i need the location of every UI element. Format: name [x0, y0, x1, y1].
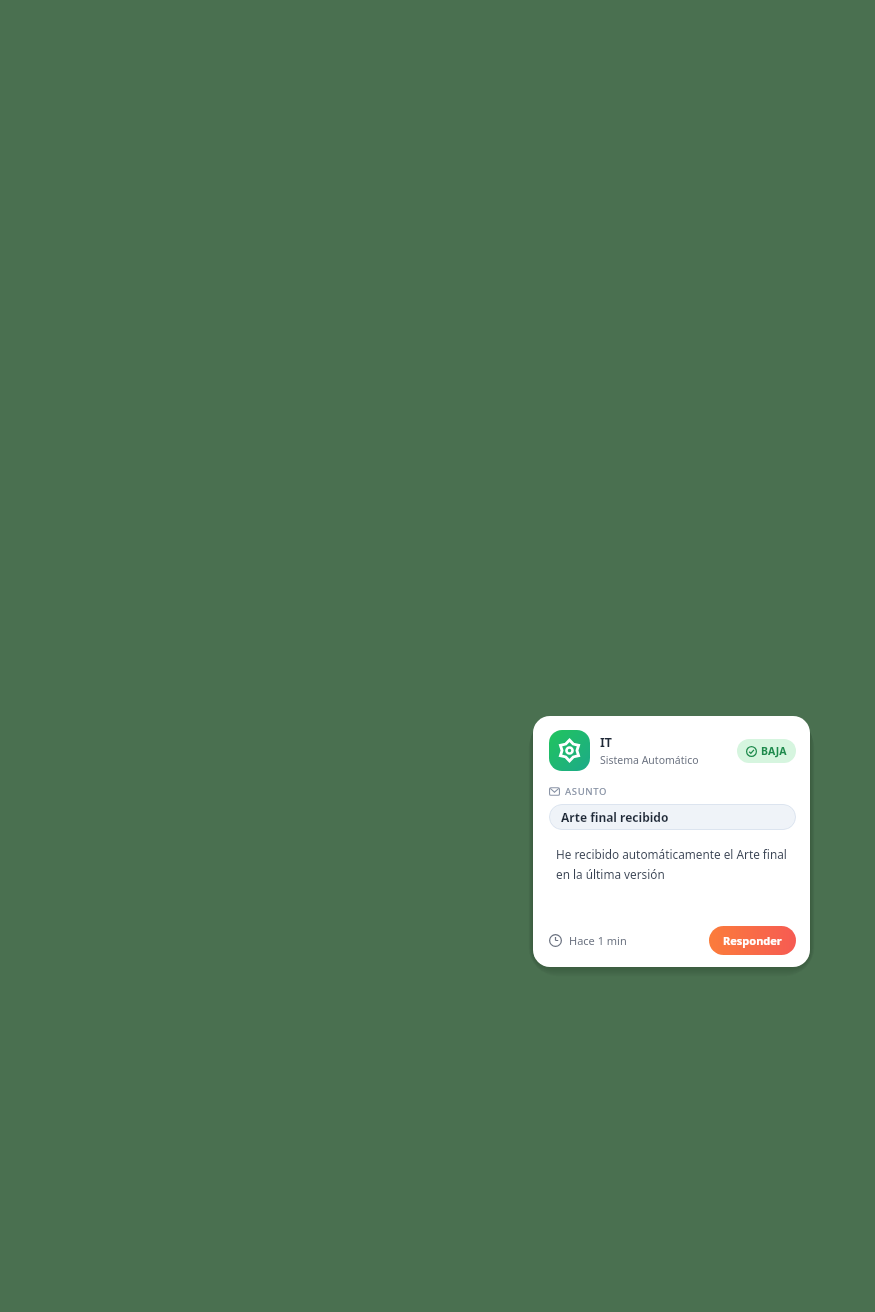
staticText: Hace 1 min	[569, 933, 627, 948]
button[interactable]: BAJA	[737, 739, 796, 763]
button[interactable]: Arte final recibido	[549, 804, 796, 830]
staticText: IT	[600, 734, 613, 751]
staticText: ASUNTO	[565, 785, 608, 798]
button[interactable]: Sistema Automático	[533, 716, 810, 967]
staticText: Sistema Automático	[600, 753, 699, 767]
other: Sistema Automático	[549, 730, 590, 771]
staticText: Arte final recibido	[561, 809, 669, 825]
staticText: He recibido automáticamente el Arte fina…	[556, 846, 792, 883]
staticText: Responder	[723, 933, 782, 948]
staticText: BAJA	[761, 744, 787, 758]
button[interactable]: Responder	[709, 926, 796, 955]
